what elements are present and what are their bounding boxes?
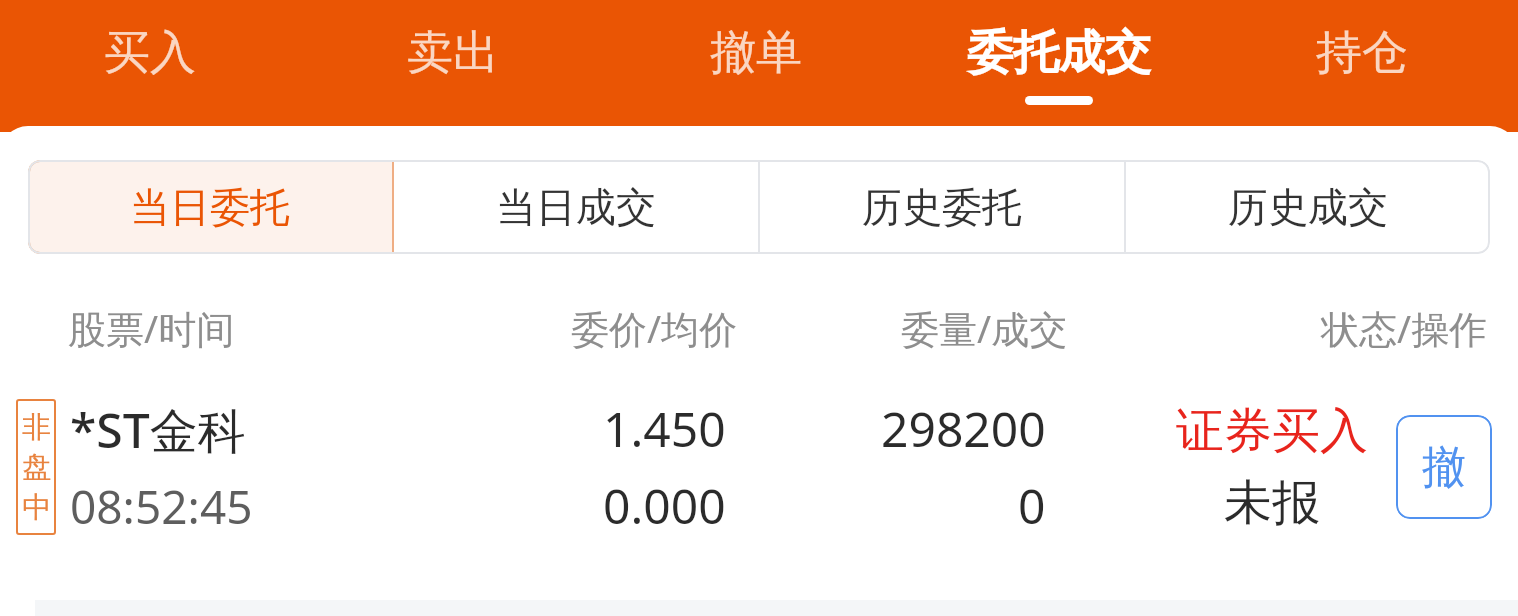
staticText: 持仓	[1316, 24, 1408, 82]
staticText: 非	[22, 409, 51, 446]
button[interactable]: 买入	[27, 0, 273, 132]
button[interactable]: 当日成交	[394, 160, 758, 254]
staticText: 未报	[1224, 473, 1320, 533]
button[interactable]: 委托成交	[936, 0, 1182, 132]
staticText: 卖出	[407, 24, 499, 82]
staticText: *ST金科	[70, 397, 246, 463]
staticText: 委价/均价	[571, 302, 738, 354]
button[interactable]: 历史成交	[1126, 160, 1490, 254]
staticText: 撤	[1422, 440, 1466, 495]
staticText: 买入	[104, 24, 196, 82]
button[interactable]: 撤单	[1396, 415, 1492, 519]
staticText: 当日委托	[130, 182, 290, 232]
staticText: 盘	[22, 449, 51, 486]
staticText: 298200	[881, 396, 1046, 461]
staticText: 历史成交	[1228, 182, 1388, 232]
button[interactable]: 非	[0, 392, 1518, 542]
staticText: 委托成交	[967, 24, 1151, 82]
staticText: 08:52:45	[70, 475, 253, 538]
staticText: 0	[1018, 473, 1046, 538]
staticText: 股票/时间	[68, 302, 235, 354]
staticText: 证券买入	[1176, 401, 1368, 461]
button[interactable]: 历史委托	[760, 160, 1124, 254]
staticText: 委量/成交	[901, 302, 1068, 354]
staticText: 历史委托	[862, 182, 1022, 232]
staticText: 状态/操作	[1321, 302, 1488, 354]
button[interactable]: 卖出	[330, 0, 576, 132]
staticText: 中	[22, 489, 51, 526]
staticText: 当日成交	[496, 182, 656, 232]
staticText: 撤单	[710, 24, 802, 82]
staticText: 1.450	[603, 396, 726, 461]
button[interactable]: 持仓	[1239, 0, 1485, 132]
button[interactable]: 撤单	[633, 0, 879, 132]
button[interactable]: 当日委托	[28, 160, 392, 254]
staticText: 0.000	[603, 473, 726, 538]
